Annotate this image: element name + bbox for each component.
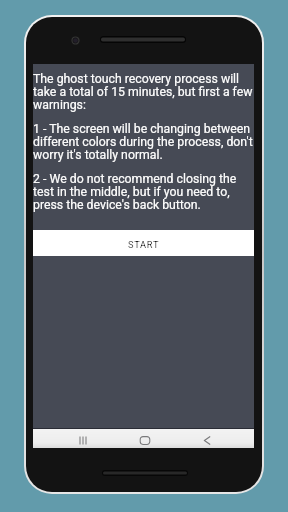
- staticText: 2 - We do not recommend closing the test…: [33, 173, 254, 212]
- button[interactable]: START: [33, 230, 254, 256]
- staticText: 1 - The screen will be changing between …: [33, 123, 254, 162]
- button[interactable]: Back: [196, 432, 217, 449]
- button[interactable]: Recent apps: [72, 432, 93, 449]
- staticText: START: [128, 239, 160, 250]
- staticText: The ghost touch recovery process will ta…: [33, 73, 254, 112]
- button[interactable]: Home: [134, 432, 155, 449]
